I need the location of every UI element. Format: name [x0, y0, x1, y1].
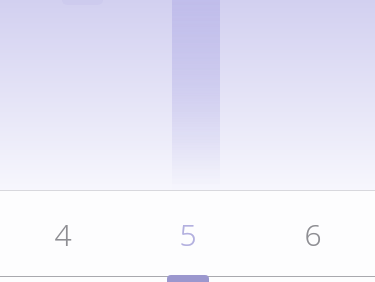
staticText: 5: [179, 214, 197, 255]
staticText: 4: [54, 214, 72, 255]
staticText: 6: [304, 214, 322, 255]
button[interactable]: Day 4: [0, 191, 125, 277]
button[interactable]: Day 5: [125, 191, 250, 277]
button[interactable]: Day 6: [250, 191, 375, 277]
